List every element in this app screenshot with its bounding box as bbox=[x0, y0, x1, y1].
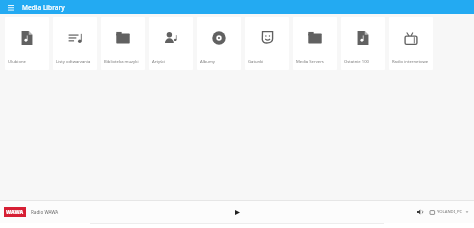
button[interactable]: WAWA bbox=[4, 207, 59, 217]
staticText: WAWA bbox=[6, 209, 24, 216]
staticText: Media Library bbox=[22, 3, 65, 12]
button[interactable]: Ulubione bbox=[5, 17, 49, 70]
staticText: Radio WAWA bbox=[31, 209, 59, 215]
staticText: Gatunki bbox=[248, 59, 289, 65]
button[interactable]: Radio internetowe bbox=[389, 17, 433, 70]
button[interactable]: Biblioteka muzyki bbox=[101, 17, 145, 70]
staticText: YOLANDI_PC bbox=[437, 209, 463, 215]
button[interactable]: Albumy bbox=[197, 17, 241, 70]
button[interactable]: YOLANDI_PC bbox=[429, 209, 470, 215]
staticText: Ostatnie 100 bbox=[344, 59, 385, 65]
button[interactable]: Ostatnie 100 bbox=[341, 17, 385, 70]
button[interactable]: Volume bbox=[415, 207, 425, 217]
staticText: Artyści bbox=[152, 59, 193, 65]
staticText: Radio internetowe bbox=[392, 59, 433, 65]
button[interactable]: Play bbox=[231, 206, 243, 218]
button[interactable]: Media Servers bbox=[293, 17, 337, 70]
button[interactable]: Gatunki bbox=[245, 17, 289, 70]
staticText: Listy odtwarzania bbox=[56, 59, 97, 65]
button[interactable]: Listy odtwarzania bbox=[53, 17, 97, 70]
staticText: Media Servers bbox=[296, 59, 337, 65]
button[interactable]: Open navigation menu bbox=[5, 2, 16, 13]
staticText: Albumy bbox=[200, 59, 241, 65]
staticText: Ulubione bbox=[8, 59, 49, 65]
button[interactable]: Artyści bbox=[149, 17, 193, 70]
staticText: Biblioteka muzyki bbox=[104, 59, 145, 65]
